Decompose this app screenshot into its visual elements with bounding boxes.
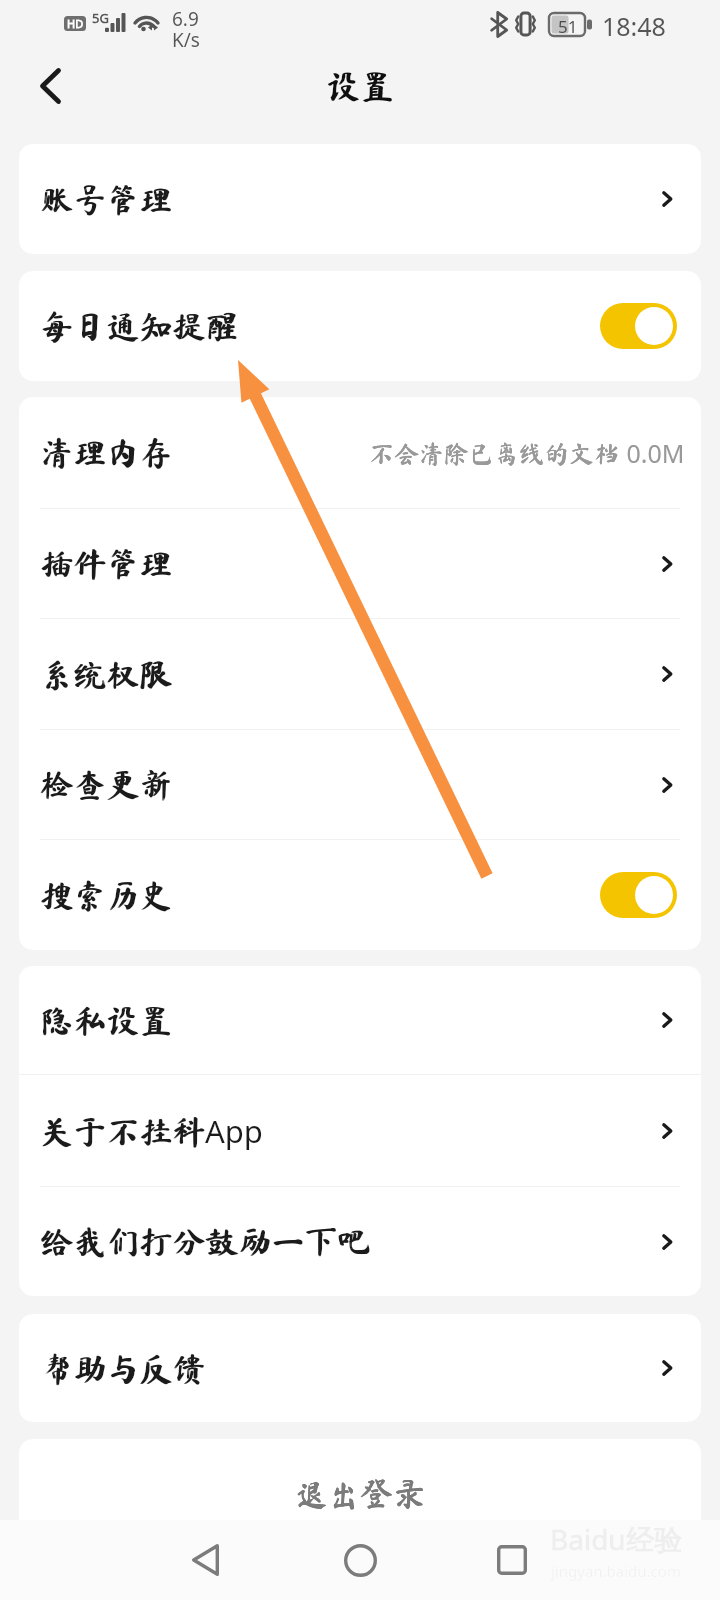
staticText: 隐私设置 bbox=[40, 1004, 172, 1037]
staticText: 帮助与反馈 bbox=[40, 1352, 205, 1385]
staticText: K/s bbox=[172, 27, 200, 53]
button[interactable]: 关于不挂科 bbox=[19, 1075, 701, 1186]
staticText: 清理内存 bbox=[40, 436, 172, 469]
staticText: 搜索历史 bbox=[40, 879, 172, 912]
button[interactable]: Toggle on bbox=[600, 872, 677, 918]
staticText: 18:48 bbox=[602, 9, 666, 43]
staticText: 账号管理 bbox=[41, 183, 173, 216]
button[interactable]: 退出登录 bbox=[19, 1439, 701, 1549]
button[interactable]: 清理内存 bbox=[19, 397, 701, 508]
staticText: 退出登录 bbox=[294, 1477, 426, 1510]
button[interactable]: 帮助与反馈 bbox=[19, 1314, 701, 1422]
staticText: 检查更新 bbox=[41, 768, 173, 801]
staticText: 51 bbox=[558, 15, 578, 38]
staticText: 账号管理 bbox=[40, 183, 172, 216]
staticText: 给我们打分鼓励一下吧 bbox=[41, 1225, 371, 1258]
button[interactable]: Back bbox=[167, 1522, 243, 1598]
staticText: 设置 bbox=[326, 69, 394, 103]
staticText: 插件管理 bbox=[40, 547, 172, 580]
staticText: 帮助与反馈 bbox=[41, 1352, 206, 1385]
button[interactable]: 搜索历史 bbox=[19, 840, 701, 950]
button[interactable]: Toggle on bbox=[600, 303, 677, 349]
staticText: 插件管理 bbox=[41, 547, 173, 580]
button[interactable]: Recents bbox=[474, 1522, 550, 1598]
button[interactable]: Back bbox=[18, 54, 82, 118]
staticText: 关于不挂科 bbox=[40, 1115, 205, 1148]
staticText: 检查更新 bbox=[40, 768, 172, 801]
button[interactable]: 给我们打分鼓励一下吧 bbox=[19, 1187, 701, 1296]
button[interactable]: 每日通知提醒 bbox=[19, 271, 701, 381]
staticText: 退出登录 bbox=[294, 1477, 426, 1510]
staticText: 关于不挂科 bbox=[41, 1115, 206, 1148]
staticText: Baidu经验 bbox=[550, 1520, 682, 1558]
button[interactable]: 隐私设置 bbox=[19, 966, 701, 1074]
staticText: 6.9 bbox=[172, 6, 199, 32]
staticText: 给我们打分鼓励一下吧 bbox=[40, 1225, 370, 1258]
staticText: 每日通知提醒 bbox=[41, 310, 239, 343]
staticText: App bbox=[205, 1110, 263, 1152]
button[interactable]: 账号管理 bbox=[19, 144, 701, 254]
button[interactable]: 检查更新 bbox=[19, 730, 701, 839]
staticText: 设置 bbox=[327, 69, 395, 103]
staticText: 5G bbox=[92, 9, 109, 27]
staticText: 系统权限 bbox=[41, 658, 173, 691]
staticText: 隐私设置 bbox=[41, 1004, 173, 1037]
button[interactable]: 系统权限 bbox=[19, 619, 701, 729]
button[interactable]: Home bbox=[322, 1522, 398, 1598]
staticText: 0.0M bbox=[620, 436, 685, 470]
staticText: 每日通知提醒 bbox=[40, 310, 238, 343]
staticText: HD bbox=[67, 16, 84, 31]
staticText: 不会清除已离线的文档 bbox=[369, 441, 620, 466]
staticText: 系统权限 bbox=[40, 658, 172, 691]
staticText: 搜索历史 bbox=[41, 879, 173, 912]
staticText: 不会清除已离线的文档 bbox=[369, 441, 620, 466]
staticText: 清理内存 bbox=[41, 436, 173, 469]
button[interactable]: 插件管理 bbox=[19, 509, 701, 618]
